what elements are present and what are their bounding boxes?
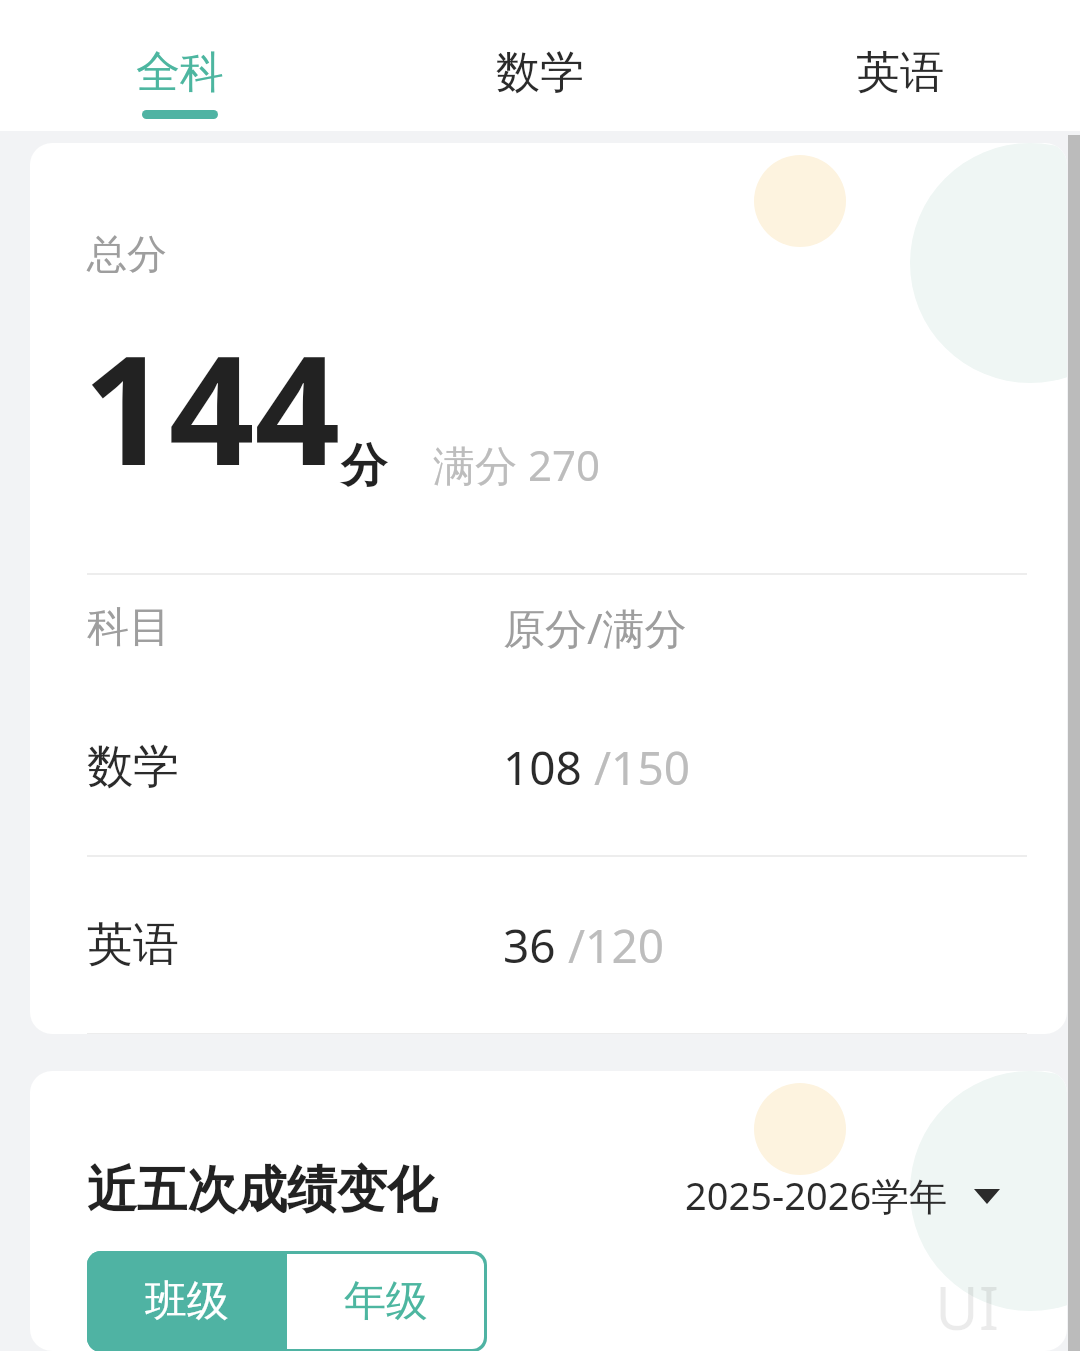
- button[interactable]: 数学: [360, 0, 720, 131]
- button[interactable]: 年级: [287, 1254, 484, 1349]
- staticText: /120: [568, 914, 665, 977]
- staticText: 数学: [87, 738, 179, 796]
- button[interactable]: 英语: [30, 857, 1067, 1033]
- other: Select school year: [972, 1180, 1002, 1210]
- staticText: 英语: [856, 45, 944, 100]
- button[interactable]: 班级: [87, 1251, 287, 1351]
- staticText: 科目: [87, 601, 171, 654]
- staticText: 英语: [87, 916, 179, 974]
- button[interactable]: 数学: [30, 679, 1067, 855]
- staticText: /150: [594, 736, 691, 799]
- staticText: 原分/满分: [503, 599, 687, 656]
- staticText: 108: [503, 736, 582, 799]
- staticText: UI: [935, 1266, 1000, 1348]
- staticText: 班级: [145, 1275, 229, 1328]
- button[interactable]: 全科: [0, 0, 360, 131]
- button[interactable]: 2025-2026学年: [685, 1169, 1002, 1221]
- staticText: 2025-2026学年: [685, 1169, 948, 1221]
- staticText: 满分 270: [433, 436, 600, 493]
- button[interactable]: 英语: [720, 0, 1080, 131]
- staticText: 总分: [87, 229, 167, 279]
- staticText: 数学: [496, 45, 584, 100]
- staticText: 36: [503, 914, 556, 977]
- staticText: 年级: [344, 1275, 428, 1328]
- staticText: 144: [83, 305, 341, 509]
- staticText: 近五次成绩变化: [87, 1159, 437, 1222]
- staticText: 分: [341, 437, 387, 495]
- staticText: 全科: [136, 45, 224, 100]
